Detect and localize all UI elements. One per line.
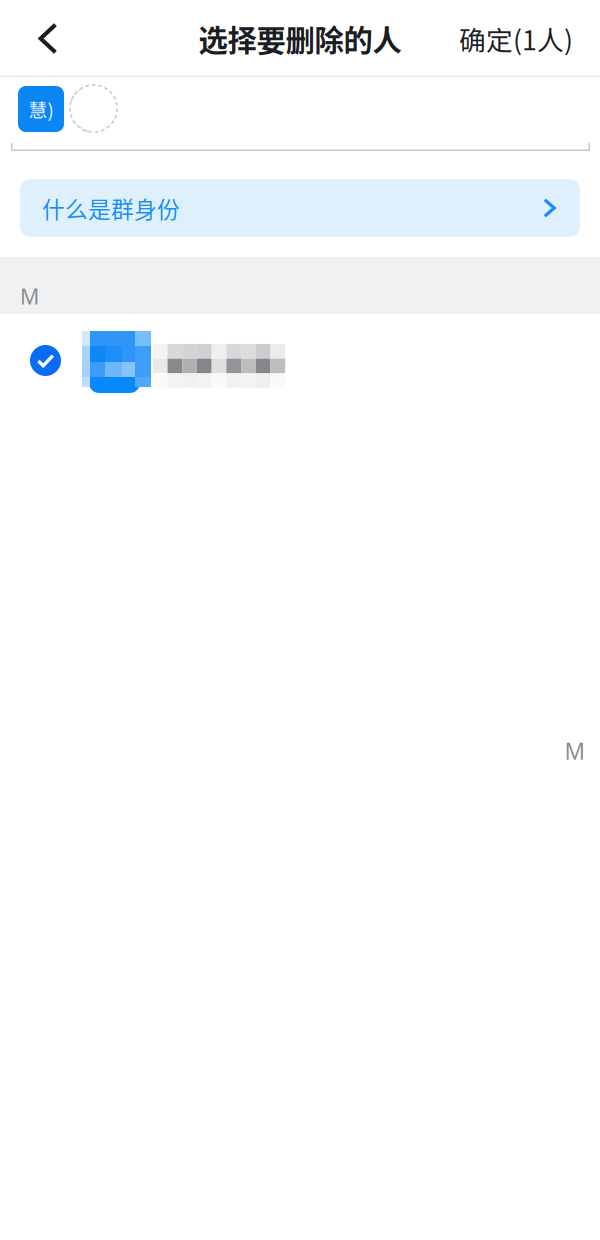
button[interactable]: Back	[15, 1, 81, 75]
button[interactable]: 什么是群身份	[20, 179, 580, 237]
button[interactable]: 确定(1人)	[443, 1, 589, 75]
button[interactable]: Add member	[69, 84, 118, 133]
button[interactable]	[0, 314, 600, 410]
button[interactable]: 慧)	[18, 86, 64, 132]
staticText: 什么是群身份	[42, 192, 180, 224]
button[interactable]: Index M	[558, 738, 592, 764]
staticText: 慧)	[28, 95, 53, 122]
staticText: M	[20, 282, 39, 310]
staticText: 确定(1人)	[459, 19, 573, 58]
staticText: 选择要删除的人	[198, 17, 401, 60]
staticText: M	[564, 736, 585, 766]
